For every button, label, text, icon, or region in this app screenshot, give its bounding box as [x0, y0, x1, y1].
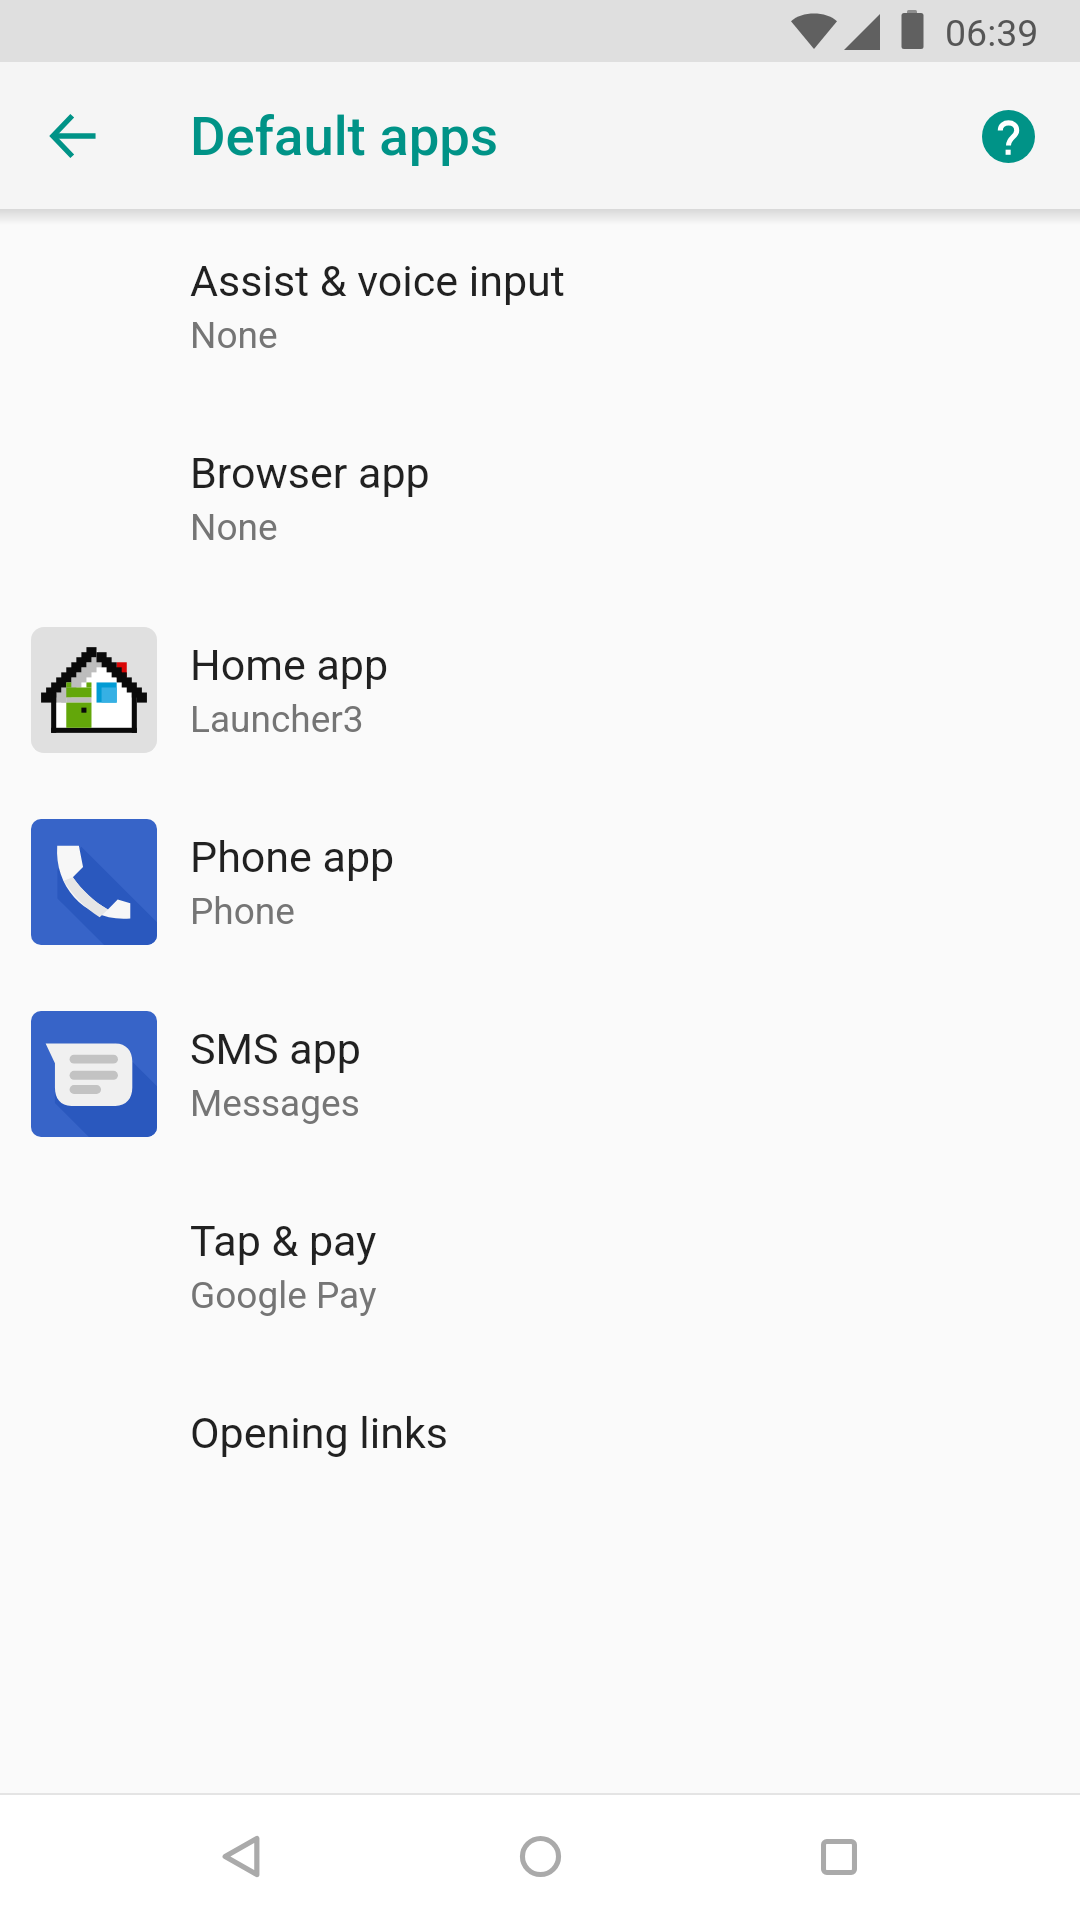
button[interactable]: Phone app [0, 786, 1080, 978]
staticText: None [190, 506, 278, 549]
button[interactable]: Navigate up [9, 71, 138, 200]
staticText: Phone app [190, 832, 395, 882]
staticText: Home app [190, 640, 389, 690]
button[interactable]: SMS app [0, 978, 1080, 1170]
staticText: Launcher3 [190, 698, 364, 741]
staticText: Google Pay [190, 1274, 377, 1317]
staticText: Assist & voice input [190, 256, 565, 306]
staticText: Browser app [190, 448, 430, 498]
staticText: 06:39 [945, 11, 1039, 55]
button[interactable]: Home app [0, 594, 1080, 786]
button[interactable]: Browser app [0, 402, 1080, 594]
button[interactable]: Recent apps [775, 1793, 902, 1920]
staticText: Messages [190, 1082, 360, 1125]
button[interactable]: Assist & voice input [0, 210, 1080, 402]
staticText: Default apps [190, 104, 498, 168]
staticText: Tap & pay [190, 1216, 377, 1266]
button[interactable]: Opening links [0, 1362, 1080, 1554]
button[interactable]: Back [177, 1793, 304, 1920]
button[interactable]: Home [477, 1793, 604, 1920]
button[interactable]: Tap & pay [0, 1170, 1080, 1362]
staticText: None [190, 314, 278, 357]
staticText: SMS app [190, 1024, 361, 1074]
staticText: Phone [190, 890, 295, 933]
staticText: Opening links [190, 1408, 448, 1458]
button[interactable]: Help [963, 91, 1053, 181]
